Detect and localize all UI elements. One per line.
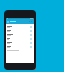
button[interactable] (6, 29, 34, 33)
button[interactable] (6, 41, 34, 45)
button[interactable] (6, 45, 34, 49)
button[interactable] (6, 33, 34, 37)
button[interactable] (6, 37, 34, 41)
button[interactable] (6, 25, 34, 29)
